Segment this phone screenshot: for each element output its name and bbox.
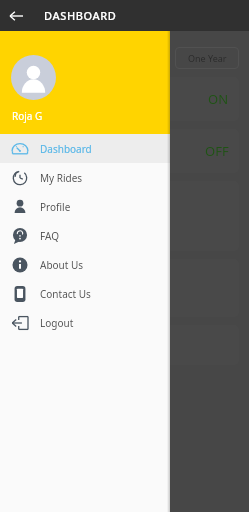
staticText: One Year [188,52,227,64]
staticText: Profile [40,200,71,214]
staticText: OFF [205,142,229,160]
button[interactable]: About Us [0,250,170,279]
button[interactable]: My Rides [0,163,170,192]
staticText: Roja G [12,109,43,123]
staticText: Logout [40,316,74,330]
button[interactable]: ON [10,77,239,121]
button[interactable]: Contact Us [0,279,170,308]
button[interactable]: One Year [175,47,239,69]
staticText: DASHBOARD [44,8,117,23]
button[interactable]: Logout [0,308,170,337]
button[interactable]: Dashboard [0,134,170,163]
staticText: My Rides [40,171,83,185]
staticText: Contact Us [40,287,91,301]
button[interactable]: FAQ [0,221,170,250]
button[interactable] [10,181,239,251]
button[interactable]: Profile [0,192,170,221]
staticText: Dashboard [40,142,92,156]
staticText: About Us [40,258,84,272]
staticText: FAQ [40,229,59,243]
button[interactable] [10,259,239,317]
staticText: ON [208,90,229,108]
button[interactable] [10,325,239,365]
button[interactable]: OFF [10,129,239,173]
button[interactable]: Back [0,0,31,31]
